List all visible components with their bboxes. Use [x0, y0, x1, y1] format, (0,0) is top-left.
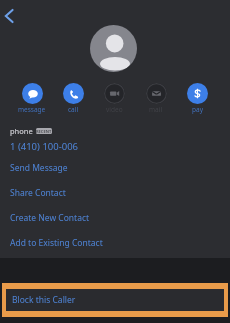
staticText: Add to Existing Contact: [10, 237, 103, 249]
button[interactable]: mail: [138, 83, 174, 114]
staticText: message: [18, 105, 46, 114]
button[interactable]: pay: [179, 83, 215, 114]
button[interactable]: Send Message: [0, 155, 230, 180]
button[interactable]: video: [96, 83, 132, 114]
staticText: mail: [149, 105, 163, 114]
button[interactable]: Block this Caller: [6, 289, 224, 311]
button[interactable]: Add to Existing Contact: [0, 230, 230, 255]
staticText: 1 (410) 100-006: [10, 140, 79, 153]
button[interactable]: call: [55, 83, 91, 114]
button[interactable]: Back: [0, 4, 22, 28]
staticText: video: [106, 105, 123, 114]
staticText: Block this Caller: [12, 294, 76, 306]
staticText: Send Message: [10, 162, 68, 174]
staticText: RECENT: [36, 129, 52, 134]
staticText: call: [68, 105, 79, 114]
button[interactable]: Create New Contact: [0, 205, 230, 230]
staticText: Create New Contact: [10, 212, 90, 224]
staticText: Share Contact: [10, 187, 66, 199]
button[interactable]: Share Contact: [0, 180, 230, 205]
staticText: pay: [192, 105, 203, 114]
staticText: phone: [10, 126, 33, 136]
button[interactable]: message: [14, 83, 50, 114]
